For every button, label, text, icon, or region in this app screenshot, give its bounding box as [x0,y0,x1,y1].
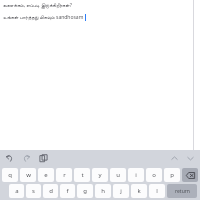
staticText: h [101,187,105,195]
staticText: e [44,171,48,179]
staticText: w [26,171,31,179]
button[interactable]: k [131,184,147,198]
button[interactable]: Backspace [182,168,198,182]
button[interactable]: y [92,168,108,182]
staticText: a [15,187,19,195]
staticText: y [98,171,102,179]
button[interactable]: g [77,184,93,198]
staticText: d [49,187,53,195]
staticText: உங்கள் பார்த்தது மிகவும் sandhosam [3,14,84,21]
button[interactable]: q [2,168,18,182]
staticText: r [63,171,66,179]
staticText: s [32,187,35,195]
staticText: q [8,171,12,179]
button[interactable]: o [146,168,162,182]
button[interactable]: h [95,184,111,198]
button[interactable]: Undo [4,153,15,164]
staticText: t [81,171,84,179]
button[interactable]: w [20,168,36,182]
button[interactable]: r [56,168,72,182]
button[interactable]: u [110,168,126,182]
staticText: i [135,171,137,179]
staticText: k [137,187,141,195]
button[interactable]: l [149,184,165,198]
button[interactable]: d [43,184,58,198]
button[interactable]: a [9,184,24,198]
button[interactable]: e [38,168,54,182]
button[interactable]: return [167,184,197,198]
button[interactable]: Paste [38,153,49,164]
staticText: j [120,187,122,195]
button[interactable]: Next [185,153,196,164]
button[interactable]: j [113,184,129,198]
button[interactable]: Redo [21,153,32,164]
button[interactable]: t [74,168,90,182]
button[interactable]: s [26,184,41,198]
staticText: p [170,171,174,179]
button[interactable]: Previous [169,153,180,164]
staticText: return [175,188,190,195]
button[interactable]: p [164,168,180,182]
staticText: வணக்கம், எப்படி இருக்கிறீர்கள்? [3,2,72,9]
staticText: f [66,187,69,195]
staticText: u [116,171,120,179]
staticText: o [152,171,156,179]
button[interactable]: i [128,168,144,182]
staticText: g [83,187,87,195]
staticText: l [156,187,158,195]
button[interactable]: f [60,184,75,198]
